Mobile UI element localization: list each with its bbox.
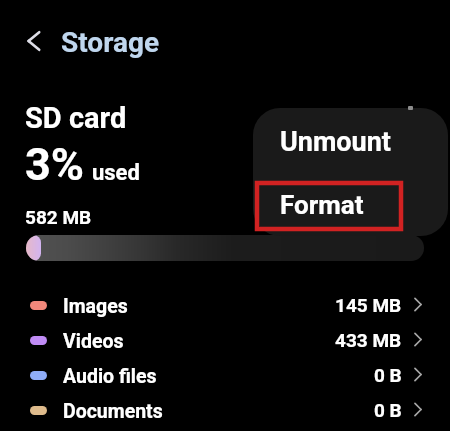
staticText: 582 MB (25, 206, 92, 228)
button[interactable]: Format (253, 173, 448, 236)
staticText: Images (63, 295, 128, 318)
staticText: Storage (61, 26, 160, 59)
button[interactable]: Back (14, 21, 54, 61)
button[interactable]: Audio files (0, 358, 450, 393)
button[interactable]: Images (0, 288, 450, 323)
button[interactable]: Documents (0, 393, 450, 428)
staticText: 3% (25, 138, 85, 191)
staticText: Documents (63, 400, 163, 423)
staticText: Videos (63, 330, 124, 353)
staticText: 0 B (374, 399, 402, 421)
staticText: 145 MB (335, 294, 402, 316)
staticText: used (92, 160, 140, 186)
button[interactable]: Videos (0, 323, 450, 358)
staticText: SD card (25, 101, 127, 135)
staticText: Audio files (63, 365, 157, 388)
staticText: 0 B (374, 364, 402, 386)
staticText: Format (280, 190, 364, 220)
button[interactable]: Unmount (253, 108, 448, 173)
staticText: 433 MB (335, 329, 402, 351)
staticText: Unmount (280, 126, 391, 158)
